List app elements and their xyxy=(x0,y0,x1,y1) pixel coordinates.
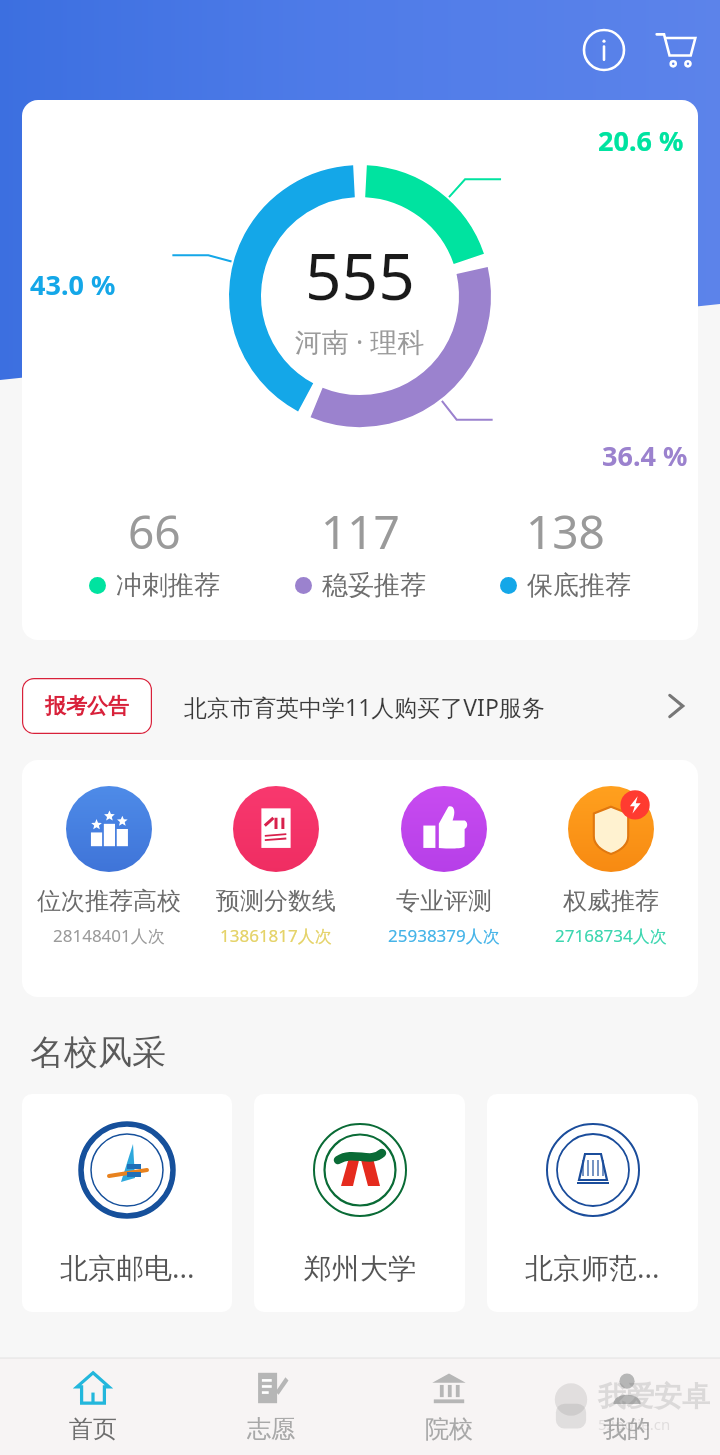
staticText: 66 xyxy=(128,500,181,563)
staticText: 预测分数线 xyxy=(216,886,336,916)
staticText: 权威推荐 xyxy=(563,886,659,916)
staticText: 首页 xyxy=(69,1414,117,1444)
staticText: 院校 xyxy=(425,1414,473,1444)
button[interactable]: 专业评测 xyxy=(364,786,524,947)
button[interactable]: 志愿 xyxy=(186,1358,356,1455)
button[interactable]: 郑州大学 xyxy=(254,1094,465,1312)
staticText: 我的 xyxy=(603,1414,651,1444)
staticText: 北京邮电... xyxy=(60,1248,195,1286)
button[interactable]: 报考公告 xyxy=(0,666,720,746)
staticText: 28148401人次 xyxy=(53,924,165,947)
button[interactable]: Information xyxy=(576,22,632,78)
staticText: 555 xyxy=(305,232,415,319)
staticText: 报考公告 xyxy=(45,693,129,719)
staticText: 13861817人次 xyxy=(220,924,332,947)
staticText: 138 xyxy=(526,500,605,563)
button[interactable]: 院校 xyxy=(364,1358,534,1455)
staticText: 冲刺推荐 xyxy=(116,569,220,602)
button[interactable]: 117 xyxy=(287,500,434,602)
staticText: 36.4 % xyxy=(602,437,688,474)
staticText: 稳妥推荐 xyxy=(322,569,426,602)
staticText: 位次推荐高校 xyxy=(37,886,181,916)
staticText: 郑州大学 xyxy=(304,1251,416,1286)
button[interactable]: 首页 xyxy=(8,1358,178,1455)
staticText: 117 xyxy=(321,500,400,563)
button[interactable]: 我的 xyxy=(542,1358,712,1455)
staticText: 河南 · 理科 xyxy=(295,323,425,360)
staticText: 志愿 xyxy=(247,1414,295,1444)
staticText: 52pojie.cn xyxy=(598,1414,671,1434)
button[interactable]: 北京师范... xyxy=(487,1094,698,1312)
staticText: 27168734人次 xyxy=(555,924,667,947)
button[interactable]: 位次推荐高校 xyxy=(29,786,189,947)
staticText: 保底推荐 xyxy=(527,569,631,602)
staticText: 专业评测 xyxy=(396,886,492,916)
button[interactable]: 66 xyxy=(81,500,228,602)
staticText: 20.6 % xyxy=(598,122,684,159)
staticText: 名校风采 xyxy=(30,1031,166,1074)
staticText: 北京市育英中学11人购买了VIP服务 xyxy=(184,691,656,722)
button[interactable]: 预测分数线 xyxy=(196,786,356,947)
button[interactable]: 权威推荐 xyxy=(531,786,691,947)
button[interactable]: 138 xyxy=(492,500,639,602)
staticText: 43.0 % xyxy=(30,266,116,303)
staticText: 25938379人次 xyxy=(388,924,500,947)
staticText: 北京师范... xyxy=(525,1248,660,1286)
button[interactable]: 北京邮电... xyxy=(22,1094,232,1312)
staticText: 我爱安卓 xyxy=(598,1379,710,1414)
button[interactable]: Shopping cart xyxy=(646,20,706,80)
button[interactable]: 555 xyxy=(22,100,698,640)
